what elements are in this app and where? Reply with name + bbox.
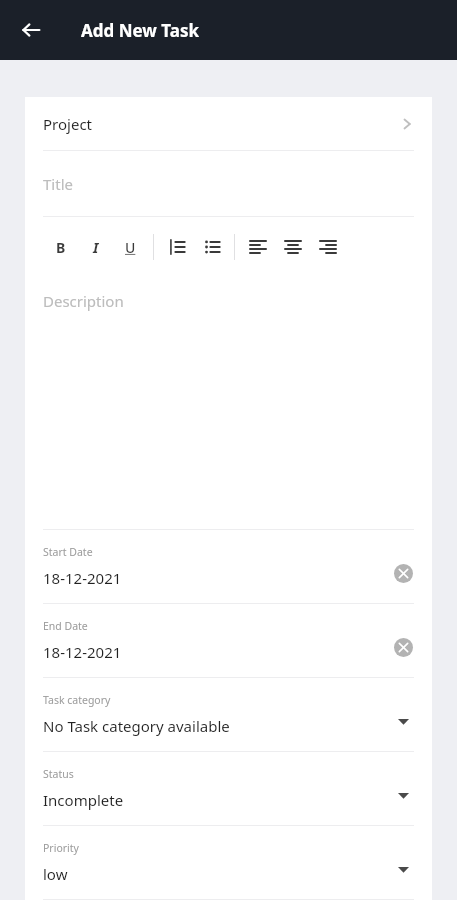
- button[interactable]: Italic: [78, 228, 113, 266]
- staticText: Priority: [43, 841, 79, 855]
- button[interactable]: Bulleted list: [194, 228, 229, 266]
- staticText: End Date: [43, 619, 88, 633]
- button[interactable]: Clear Start Date: [392, 562, 414, 584]
- staticText: Incomplete: [43, 790, 124, 810]
- button[interactable]: Bold: [43, 228, 78, 266]
- staticText: Title: [43, 174, 73, 194]
- button[interactable]: Project: [25, 97, 432, 150]
- button[interactable]: Numbered list: [159, 228, 194, 266]
- button[interactable]: Title: [25, 151, 432, 216]
- staticText: Project: [43, 114, 92, 134]
- staticText: 18-12-2021: [43, 568, 122, 588]
- staticText: low: [43, 864, 68, 884]
- button[interactable]: Open Task category options: [392, 710, 414, 732]
- button[interactable]: Align left: [240, 228, 275, 266]
- button[interactable]: Underline: [113, 228, 148, 266]
- staticText: Start Date: [43, 545, 93, 559]
- button[interactable]: Align right: [310, 228, 345, 266]
- button[interactable]: Align center: [275, 228, 310, 266]
- staticText: 18-12-2021: [43, 642, 122, 662]
- button[interactable]: End Date: [25, 604, 432, 677]
- staticText: Task category: [43, 693, 111, 707]
- staticText: No Task category available: [43, 716, 230, 736]
- button[interactable]: Start Date: [25, 530, 432, 603]
- button[interactable]: Open Status options: [392, 784, 414, 806]
- button[interactable]: Open Priority options: [392, 858, 414, 880]
- button[interactable]: Priority: [25, 826, 432, 899]
- button[interactable]: Description: [25, 277, 432, 529]
- staticText: Description: [43, 291, 124, 311]
- staticText: Add New Task: [81, 19, 199, 42]
- staticText: I: [93, 238, 99, 257]
- button[interactable]: Back: [13, 12, 49, 48]
- button[interactable]: Clear End Date: [392, 636, 414, 658]
- staticText: B: [56, 238, 66, 257]
- button[interactable]: Status: [25, 752, 432, 825]
- staticText: U: [125, 238, 136, 257]
- button[interactable]: Task category: [25, 678, 432, 751]
- staticText: Status: [43, 767, 74, 781]
